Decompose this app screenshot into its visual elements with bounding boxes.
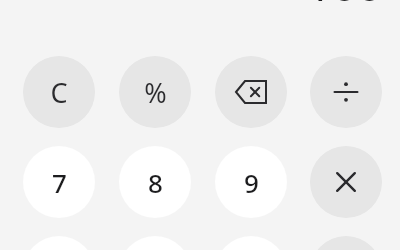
staticText: % (144, 74, 167, 111)
button[interactable]: 8 (119, 146, 191, 218)
button[interactable]: Clear (23, 56, 95, 128)
button[interactable]: Multiply (310, 146, 382, 218)
staticText: 9 (244, 165, 259, 200)
staticText: 7 (52, 165, 67, 200)
button[interactable]: 5 (119, 236, 191, 250)
button[interactable]: 6 (215, 236, 287, 250)
staticText: 8 (148, 165, 163, 200)
button[interactable]: Percent (119, 56, 191, 128)
button[interactable]: 9 (215, 146, 287, 218)
button[interactable]: Backspace (215, 56, 287, 128)
staticText: C (50, 74, 68, 111)
button[interactable]: 4 (23, 236, 95, 250)
button[interactable]: Minus (310, 236, 382, 250)
button[interactable]: Divide (310, 56, 382, 128)
staticText: 100 (306, 0, 382, 14)
button[interactable]: 7 (23, 146, 95, 218)
